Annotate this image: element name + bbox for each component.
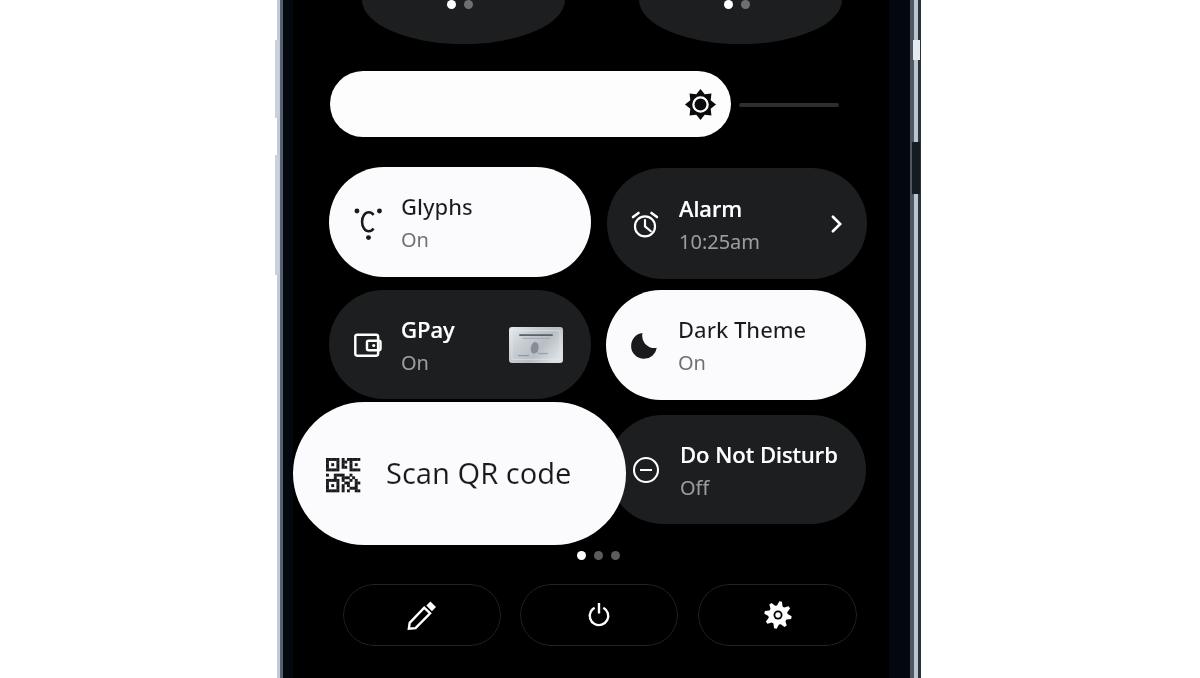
button[interactable]: Scan QR code <box>293 402 626 545</box>
button[interactable]: Power <box>520 584 678 646</box>
button[interactable]: GPay <box>329 290 591 399</box>
staticText: Glyphs <box>401 191 473 221</box>
staticText: Off <box>680 474 710 501</box>
button[interactable]: Settings <box>698 584 857 646</box>
staticText: Alarm <box>679 193 743 223</box>
staticText: Do Not Disturb <box>680 439 838 469</box>
button[interactable]: Edit <box>343 584 501 646</box>
button[interactable]: Glyphs <box>329 167 591 277</box>
staticText: Dark Theme <box>678 314 807 344</box>
staticText: GPay <box>401 314 455 344</box>
staticText: 10:25am <box>679 228 761 255</box>
button[interactable]: Brightness <box>330 71 731 137</box>
staticText: On <box>678 349 706 376</box>
button[interactable]: Alarm <box>607 168 867 279</box>
staticText: On <box>401 349 429 376</box>
button[interactable]: Dark Theme <box>606 290 866 400</box>
button[interactable]: Do Not Disturb <box>608 415 866 524</box>
staticText: On <box>401 226 429 253</box>
staticText: Scan QR code <box>386 453 572 492</box>
